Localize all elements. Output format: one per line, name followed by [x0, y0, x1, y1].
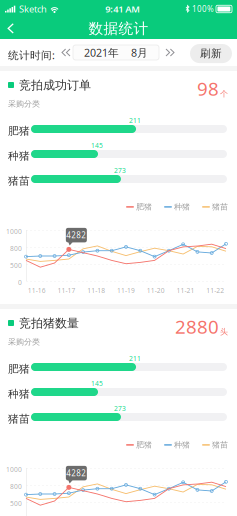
staticText: 11-20 [147, 286, 165, 295]
staticText: 种猪 [174, 202, 190, 212]
staticText: 竞拍成功订单 [19, 78, 91, 93]
staticText: 猪苗 [212, 440, 228, 450]
staticText: 11-16 [28, 286, 46, 295]
staticText: 2021年 [84, 45, 119, 60]
staticText: 145 [91, 141, 103, 150]
staticText: 个 [220, 89, 228, 99]
staticText: 100% [192, 4, 214, 14]
staticText: 采购分类 [8, 337, 40, 347]
staticText: 11-18 [87, 286, 105, 295]
staticText: 猪苗 [8, 174, 30, 188]
staticText: 11-19 [117, 286, 135, 295]
staticText: 211 [129, 116, 141, 125]
staticText: 2880 [175, 314, 219, 339]
staticText: 4282 [66, 468, 86, 478]
staticText: 273 [114, 166, 126, 175]
staticText: 800 [10, 482, 22, 491]
staticText: 猪苗 [212, 202, 228, 212]
staticText: 肥猪 [8, 124, 30, 138]
staticText: 800 [10, 244, 22, 253]
staticText: 1000 [6, 227, 22, 236]
staticText: 145 [91, 379, 103, 388]
staticText: 种猪 [8, 149, 30, 163]
staticText: 采购分类 [8, 99, 40, 109]
staticText: 猪苗 [8, 412, 30, 426]
staticText: 11-17 [58, 286, 76, 295]
staticText: 肥猪 [8, 362, 30, 376]
button[interactable]: Back [0, 18, 23, 39]
button[interactable]: 刷新 [190, 44, 232, 63]
staticText: 数据统计 [88, 19, 148, 37]
staticText: 统计时间: [8, 48, 55, 62]
staticText: 11-21 [176, 286, 194, 295]
staticText: 头 [220, 327, 228, 337]
staticText: 种猪 [8, 387, 30, 401]
staticText: 273 [114, 404, 126, 413]
staticText: 500 [10, 261, 22, 270]
staticText: 1000 [6, 465, 22, 474]
staticText: 211 [129, 354, 141, 363]
staticText: 11-22 [206, 286, 224, 295]
staticText: 500 [10, 499, 22, 508]
staticText: 种猪 [174, 440, 190, 450]
staticText: 肥猪 [136, 440, 152, 450]
staticText: 竞拍猪数量 [19, 316, 79, 331]
staticText: 9:41 AM [105, 3, 140, 15]
button[interactable]: Next [161, 44, 179, 61]
staticText: 0 [18, 278, 22, 287]
staticText: 8月 [131, 45, 148, 60]
staticText: 肥猪 [136, 202, 152, 212]
staticText: 4282 [66, 230, 86, 240]
staticText: 98 [197, 76, 219, 101]
button[interactable]: Previous [57, 44, 75, 61]
staticText: 刷新 [200, 47, 222, 60]
staticText: Sketch [19, 3, 47, 15]
